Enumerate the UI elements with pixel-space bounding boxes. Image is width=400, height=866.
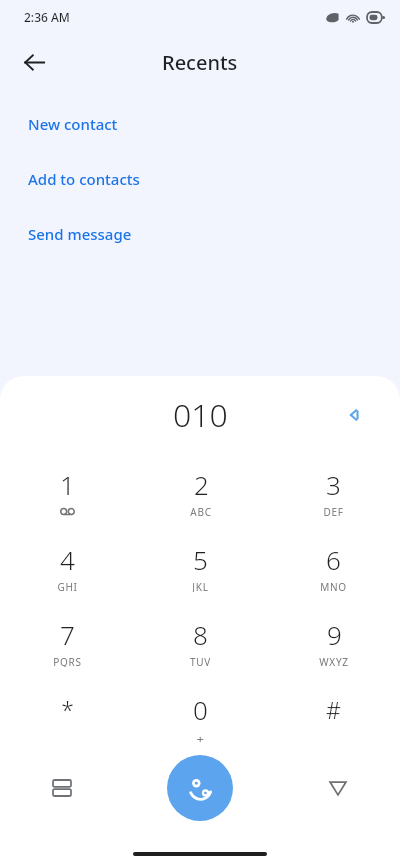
staticText: 9 [327,617,342,652]
staticText: 7 [60,617,75,652]
button[interactable]: Call [167,755,233,821]
button[interactable]: Add to contacts [0,151,400,206]
staticText: PQRS [53,655,82,667]
button[interactable]: 3 [267,454,400,529]
button[interactable]: 4 [0,529,134,604]
staticText: 4 [60,542,75,577]
staticText: 5 [193,542,208,577]
staticText: 0 [193,692,208,727]
staticText: 8 [193,617,208,652]
staticText: * [61,694,74,725]
button[interactable]: Backspace [330,393,374,437]
button[interactable]: 8 [134,604,267,679]
button[interactable]: 7 [0,604,134,679]
staticText: # [326,694,341,725]
button[interactable]: 1 [0,454,134,529]
button[interactable]: Call log [36,762,88,814]
staticText: TUV [190,655,211,667]
staticText: Add to contacts [28,169,140,189]
button[interactable]: Hide dialpad [312,762,364,814]
button[interactable]: Back [10,38,58,86]
staticText: MNO [320,580,347,592]
button[interactable]: 5 [134,529,267,604]
staticText: GHI [57,580,78,592]
staticText: 010 [173,393,228,437]
staticText: Recents [162,49,238,76]
staticText: Send message [28,224,132,244]
staticText: 3 [326,467,341,502]
staticText: JKL [192,580,209,592]
button[interactable]: Send message [0,206,400,261]
button[interactable]: # [267,679,400,754]
staticText: 1 [60,467,75,502]
staticText: 2 [194,467,209,502]
button[interactable]: New contact [0,96,400,151]
staticText: WXYZ [319,655,349,667]
staticText: 6 [326,542,341,577]
staticText: 2:36 AM [24,9,70,25]
button[interactable]: * [0,679,134,754]
staticText: DEF [323,505,344,517]
staticText: New contact [28,114,118,134]
button[interactable]: 0 [134,679,267,754]
button[interactable]: 2 [134,454,267,529]
button[interactable]: 6 [267,529,400,604]
staticText: + [196,730,205,742]
staticText: ABC [190,505,212,517]
button[interactable]: 9 [267,604,400,679]
